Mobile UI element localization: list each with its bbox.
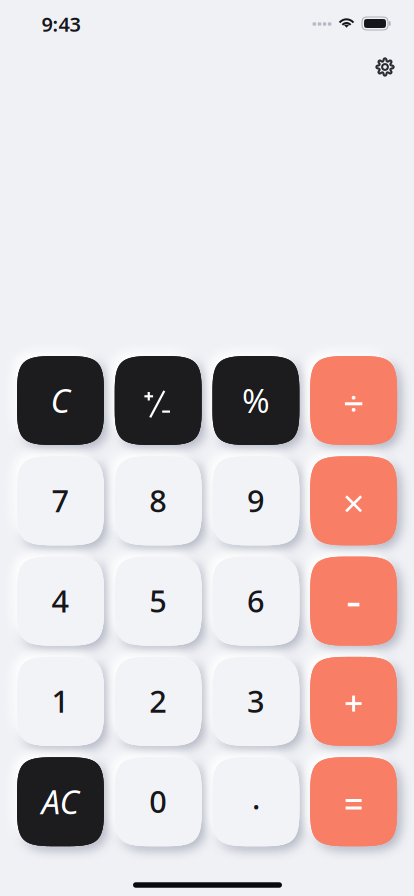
staticText: 8 [149, 480, 167, 521]
staticText: 1 [51, 680, 69, 721]
staticText: AC [41, 779, 79, 823]
button[interactable]: C [17, 356, 104, 445]
button[interactable]: Multiply [310, 456, 397, 545]
button[interactable]: 7 [17, 456, 104, 545]
button[interactable]: Equals [310, 757, 397, 846]
button[interactable]: AC [17, 757, 104, 846]
button[interactable]: 8 [115, 456, 202, 545]
staticText: . [252, 777, 260, 818]
staticText: 5 [149, 580, 167, 621]
button[interactable]: % [212, 356, 299, 445]
button[interactable]: 6 [212, 557, 299, 646]
staticText: % [242, 378, 270, 422]
button[interactable]: 3 [212, 657, 299, 746]
button[interactable]: 1 [17, 657, 104, 746]
button[interactable]: Plus minus [115, 356, 202, 445]
button[interactable]: Divide [310, 356, 397, 445]
button[interactable]: Minus [310, 557, 397, 646]
staticText: 4 [51, 580, 69, 621]
button[interactable]: 2 [115, 657, 202, 746]
staticText: C [50, 378, 70, 422]
staticText: 0 [149, 781, 167, 821]
button[interactable]: Plus [310, 657, 397, 746]
button[interactable]: 4 [17, 557, 104, 646]
button[interactable]: 9 [212, 456, 299, 545]
staticText: 6 [247, 580, 265, 621]
staticText: 2 [149, 680, 167, 721]
button[interactable]: . [212, 757, 299, 846]
staticText: 9 [247, 480, 265, 521]
button[interactable]: 5 [115, 557, 202, 646]
button[interactable]: 0 [115, 757, 202, 846]
staticText: 7 [51, 480, 69, 521]
staticText: 3 [247, 680, 265, 721]
button[interactable]: Settings [363, 45, 407, 89]
staticText: 9:43 [41, 11, 80, 37]
